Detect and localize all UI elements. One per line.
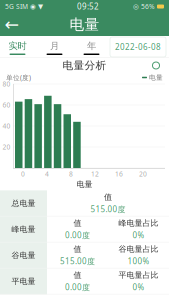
staticText: 20: [2, 142, 10, 151]
staticText: 16: [115, 169, 123, 178]
staticText: 80: [2, 79, 10, 88]
staticText: 值: [73, 218, 81, 228]
staticText: 12: [91, 169, 99, 178]
staticText: 100%: [127, 256, 149, 267]
staticText: 平电量: [11, 276, 35, 286]
staticText: 电量: [69, 15, 99, 33]
staticText: 0: [21, 169, 25, 178]
staticText: 实时: [8, 40, 26, 51]
staticText: 值: [104, 192, 112, 202]
staticText: 0.00度: [65, 282, 90, 293]
staticText: 单位(度): [6, 73, 31, 82]
button[interactable]: Back: [0, 13, 24, 35]
staticText: ◎: [133, 3, 139, 10]
staticText: 4: [45, 169, 49, 178]
staticText: 09:52: [77, 1, 99, 12]
staticText: 20: [139, 169, 147, 178]
staticText: ←: [4, 15, 19, 34]
staticText: 56%: [141, 2, 155, 11]
staticText: 平电量占比: [118, 270, 158, 280]
staticText: 年: [87, 40, 96, 51]
button[interactable]: Refresh: [149, 58, 163, 72]
staticText: 峰电量占比: [118, 218, 158, 228]
staticText: 0%: [132, 230, 144, 241]
staticText: 谷电量占比: [118, 244, 158, 254]
button[interactable]: 2022-06-08: [110, 37, 166, 57]
button[interactable]: 月: [36, 36, 73, 58]
staticText: 515.00度: [90, 204, 125, 215]
button[interactable]: 实时: [0, 36, 36, 58]
staticText: 谷电量: [11, 250, 35, 260]
staticText: 60: [2, 100, 10, 109]
staticText: 5G: [5, 2, 14, 11]
staticText: 值: [73, 244, 81, 254]
staticText: ◉: [30, 3, 36, 10]
staticText: 0.00度: [65, 230, 90, 241]
staticText: ▼: [38, 3, 43, 10]
staticText: 515.00度: [60, 256, 95, 267]
staticText: 电量: [76, 179, 92, 189]
staticText: 电量: [147, 73, 163, 82]
staticText: 峰电量: [11, 224, 35, 234]
staticText: SIM: [16, 2, 28, 11]
staticText: 40: [2, 121, 10, 130]
staticText: 电量分析: [62, 59, 106, 72]
staticText: 总电量: [11, 198, 35, 208]
button[interactable]: 年: [73, 36, 110, 58]
staticText: 8: [69, 169, 73, 178]
staticText: 值: [73, 270, 81, 280]
staticText: 2022-06-08: [115, 42, 161, 52]
staticText: 0%: [132, 282, 144, 293]
staticText: 月: [50, 40, 59, 51]
